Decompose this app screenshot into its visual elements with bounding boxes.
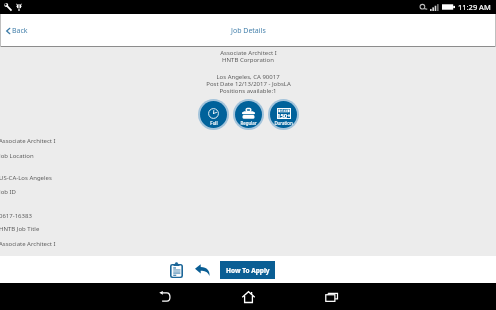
staticText: Duration [274, 120, 293, 126]
button[interactable]: Recents [320, 285, 343, 308]
staticText: Job Location [0, 152, 34, 160]
staticText: Job Details [231, 26, 266, 36]
staticText: Associate Architect I [0, 240, 56, 248]
button[interactable]: How To Apply [220, 261, 275, 279]
staticText: Associate Architect I [220, 49, 277, 57]
staticText: Post Date 12/13/2017 - JobsLA [206, 80, 291, 88]
staticText: Job ID [0, 188, 16, 196]
button[interactable]: DAYS [268, 99, 299, 130]
staticText: Regular [240, 120, 257, 126]
button[interactable]: Home [237, 285, 260, 308]
staticText: HNTB Job Title [0, 225, 40, 233]
staticText: Back [12, 26, 28, 36]
button[interactable]: Back [6, 26, 28, 36]
staticText: 11:29 AM [458, 2, 491, 12]
staticText: US-CA-Los Angeles [0, 174, 52, 182]
staticText: Full [210, 120, 218, 126]
button[interactable]: Share [191, 261, 213, 279]
staticText: DAYS [280, 109, 289, 113]
button[interactable]: Regular [233, 99, 264, 130]
staticText: Positions available:1 [219, 87, 277, 95]
staticText: Los Angeles, CA 90017 [216, 73, 280, 81]
button[interactable]: Full [198, 99, 229, 130]
button[interactable]: Job description [166, 261, 186, 279]
button[interactable]: Back [153, 285, 176, 308]
staticText: HNTB Corporation [222, 56, 274, 64]
staticText: 0617-16383 [0, 212, 32, 220]
staticText: 150+ [277, 112, 291, 120]
staticText: How To Apply [226, 266, 270, 275]
staticText: Associate Architect I [0, 137, 56, 145]
